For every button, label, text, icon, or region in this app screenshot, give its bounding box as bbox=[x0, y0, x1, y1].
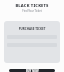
staticText: BLACK TICKETS bbox=[0, 3, 64, 8]
staticText: BUY NOW bbox=[26, 69, 39, 72]
staticText: PURCHASE TICKET bbox=[7, 27, 57, 31]
button[interactable]: BUY NOW bbox=[9, 69, 55, 72]
staticText: Find Your Ticket bbox=[0, 9, 64, 13]
